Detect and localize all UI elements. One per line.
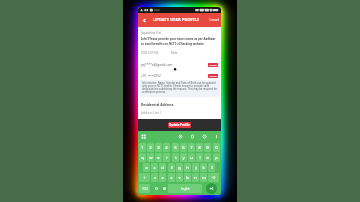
staticText: h [186, 165, 189, 171]
staticText: 6 [182, 145, 185, 151]
button[interactable]: 9 [204, 143, 211, 152]
staticText: q [141, 155, 144, 161]
button[interactable]: Cancel [209, 18, 221, 22]
staticText: p [215, 155, 218, 161]
staticText: English [181, 187, 190, 191]
staticText: d [161, 165, 164, 171]
staticText: Male [171, 51, 178, 55]
staticText: x [161, 175, 164, 181]
button[interactable]: s [151, 163, 158, 172]
button[interactable]: w [147, 153, 154, 162]
staticText: 5 [174, 145, 177, 151]
button[interactable]: 4 [163, 143, 170, 152]
button[interactable]: Update [208, 74, 218, 78]
staticText: v [178, 175, 181, 181]
staticText: 3 [157, 145, 160, 151]
staticText: 4 [165, 145, 168, 151]
button[interactable]: b [184, 173, 191, 182]
staticText: a [145, 165, 148, 171]
button[interactable]: 3 [155, 143, 162, 152]
button[interactable]: p [213, 153, 220, 162]
button[interactable]: ?123 [139, 184, 150, 193]
staticText: Update Profile [169, 123, 190, 127]
staticText: g [178, 165, 181, 171]
button[interactable]: e [155, 153, 162, 162]
staticText: 8 [198, 145, 201, 151]
button[interactable]: Keyboard toolbar [141, 134, 146, 139]
staticText: Cancel [209, 18, 219, 22]
staticText: s [153, 165, 156, 171]
staticText: y [182, 155, 185, 161]
button[interactable]: 1 [139, 143, 146, 152]
button[interactable]: Back [140, 16, 149, 25]
staticText: o [206, 155, 209, 161]
staticText: ?123 [142, 187, 148, 191]
button[interactable]: More options [214, 134, 219, 139]
button[interactable]: f [168, 163, 175, 172]
staticText: Update [209, 75, 217, 78]
staticText: b [186, 175, 189, 181]
staticText: +91 •••••4752 [141, 74, 161, 78]
button[interactable]: v [176, 173, 183, 182]
button[interactable]: 6 [180, 143, 187, 152]
staticText: Info! Please provide your exact name as … [141, 37, 216, 46]
button[interactable]: k [200, 163, 207, 172]
staticText: j [195, 165, 197, 171]
button[interactable]: Emoji [202, 134, 207, 139]
button[interactable]: n [192, 173, 199, 182]
staticText: Update [209, 64, 217, 67]
button[interactable]: x [159, 173, 166, 182]
button[interactable]: 0 [213, 143, 220, 152]
staticText: k [202, 165, 205, 171]
button[interactable]: Update [208, 63, 218, 67]
button[interactable]: English [168, 184, 202, 193]
staticText: 2 [149, 145, 152, 151]
button[interactable]: Backspace [208, 173, 219, 182]
button[interactable]: m [200, 173, 207, 182]
button[interactable]: 7 [188, 143, 195, 152]
staticText: UPDATE USER PROFILE [153, 17, 200, 23]
button[interactable]: d [159, 163, 166, 172]
button[interactable]: u [188, 153, 195, 162]
staticText: w [149, 155, 153, 161]
button[interactable]: 2 [147, 143, 154, 152]
button[interactable]: t [172, 153, 179, 162]
staticText: Jayalatha Pal [141, 30, 162, 35]
staticText: f [171, 165, 173, 171]
staticText: DOB 12/1996 [141, 51, 159, 55]
button[interactable]: Clipboard [190, 134, 195, 139]
button[interactable]: q [139, 153, 146, 162]
button[interactable]: r [163, 153, 170, 162]
staticText: z [154, 175, 156, 181]
staticText: Residential Address [141, 102, 174, 106]
button[interactable]: Shift [139, 173, 150, 182]
button[interactable]: Enter [206, 183, 217, 194]
staticText: u [190, 155, 193, 161]
staticText: 9 [206, 145, 209, 151]
button[interactable]: Settings [152, 184, 160, 193]
staticText: i [199, 155, 201, 161]
staticText: e [157, 155, 160, 161]
button[interactable]: a [143, 163, 150, 172]
staticText: r [166, 155, 168, 161]
staticText: 0 [215, 145, 218, 151]
button[interactable]: Settings [178, 134, 183, 139]
button[interactable]: o [204, 153, 211, 162]
button[interactable]: j [192, 163, 199, 172]
button[interactable]: 5 [172, 143, 179, 152]
button[interactable]: l [208, 163, 215, 172]
button[interactable]: Update Profile [168, 122, 191, 128]
button[interactable]: z [151, 173, 158, 182]
staticText: Address Line 1 [141, 111, 162, 115]
button[interactable]: c [168, 173, 175, 182]
button[interactable]: y [180, 153, 187, 162]
staticText: n [194, 175, 197, 181]
button[interactable]: g [176, 163, 183, 172]
staticText: Information: Name, Gender and Date of Bi… [142, 81, 218, 93]
button[interactable]: h [184, 163, 191, 172]
button[interactable]: Emoji [160, 184, 168, 193]
staticText: c [170, 175, 173, 181]
staticText: l [211, 165, 213, 171]
button[interactable]: 8 [196, 143, 203, 152]
button[interactable]: i [196, 153, 203, 162]
